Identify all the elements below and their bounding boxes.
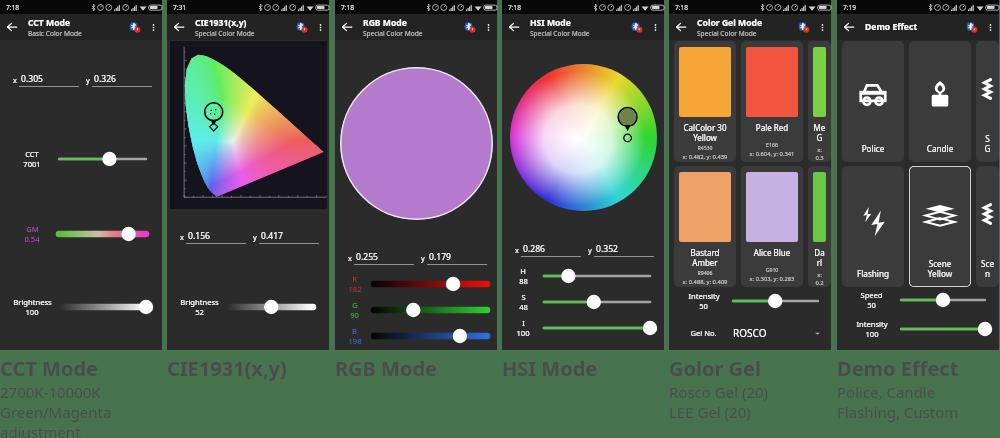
button[interactable]: More options: [479, 18, 497, 36]
staticText: Demo Effect: [865, 21, 918, 33]
staticText: Scen: [979, 258, 996, 279]
button[interactable]: Candle: [909, 41, 971, 162]
staticText: Special Color Mode: [195, 29, 255, 38]
staticText: Darl: [813, 247, 826, 269]
staticText: CIE1931(x,y): [195, 17, 247, 29]
staticText: Demo Effect: [837, 355, 959, 382]
staticText: CCT Mode: [28, 17, 71, 29]
staticText: G: [352, 300, 358, 310]
staticText: 100: [865, 329, 879, 339]
button[interactable]: More options: [144, 18, 162, 36]
button[interactable]: Back: [669, 15, 693, 39]
staticText: Green/Magenta: [0, 402, 112, 422]
button[interactable]: Bluetooth: [126, 18, 144, 36]
staticText: S: [521, 292, 526, 302]
staticText: 7001: [23, 159, 41, 169]
staticText: R9406: [679, 269, 731, 276]
button[interactable]: More options: [311, 18, 329, 36]
staticText: x: 0.303, y: 0.283: [746, 275, 798, 283]
staticText: 0.156: [188, 230, 210, 242]
staticText: Intensity: [688, 291, 720, 301]
button[interactable]: Back: [502, 15, 526, 39]
button[interactable]: Bluetooth: [293, 18, 311, 36]
staticText: x: [348, 253, 352, 263]
button[interactable]: Police: [842, 41, 904, 162]
staticText: Basic Color Mode: [28, 29, 82, 38]
button[interactable]: Back: [335, 15, 359, 39]
staticText: Candle: [912, 143, 968, 154]
staticText: Intensity: [856, 319, 888, 329]
button[interactable]: More options: [981, 18, 999, 36]
staticText: 88: [519, 276, 528, 286]
staticText: Special Color Mode: [363, 29, 423, 38]
button[interactable]: S G: [976, 41, 999, 162]
staticText: Color Gel Mode: [697, 17, 763, 29]
staticText: H: [520, 266, 526, 276]
button[interactable]: More options: [646, 18, 664, 36]
staticText: E166: [746, 141, 798, 148]
staticText: Rosco Gel (20): [669, 382, 769, 402]
staticText: Me G: [813, 122, 826, 144]
staticText: 7:31: [173, 3, 187, 12]
staticText: 0.179: [429, 251, 451, 263]
staticText: 90: [350, 310, 359, 320]
staticText: 0.54: [24, 234, 40, 244]
staticText: LEE Gel (20): [669, 402, 751, 422]
button[interactable]: Back: [167, 15, 191, 39]
staticText: CCT: [25, 149, 39, 159]
button[interactable]: Pale Red: [741, 41, 803, 162]
button[interactable]: Bastard Amber: [674, 166, 736, 287]
button[interactable]: Me G: [808, 41, 831, 162]
staticText: Golor Gel: [669, 355, 761, 382]
staticText: 7:19: [843, 3, 857, 12]
button[interactable]: More options: [813, 18, 831, 36]
staticText: 50: [699, 301, 708, 311]
staticText: R: [352, 274, 357, 284]
staticText: I: [522, 318, 525, 328]
staticText: 0.286: [523, 243, 545, 255]
staticText: ROSCO: [733, 326, 767, 340]
staticText: x: 0.2: [813, 271, 826, 286]
staticText: 2700K-10000K: [0, 382, 101, 402]
staticText: Scene Yellow: [912, 258, 968, 279]
staticText: y: [588, 245, 592, 255]
button[interactable]: Bluetooth: [628, 18, 646, 36]
staticText: 7:18: [6, 3, 20, 12]
button[interactable]: Bluetooth: [963, 18, 981, 36]
button[interactable]: Scen: [976, 166, 999, 287]
staticText: x: 0.3: [813, 146, 826, 161]
staticText: Brightness: [13, 297, 52, 307]
button[interactable]: CalColor 30 Yellow: [674, 41, 736, 162]
staticText: Pale Red: [746, 122, 798, 133]
staticText: Flashing: [845, 268, 901, 279]
staticText: 100: [25, 307, 39, 317]
staticText: Police, Candle: [837, 382, 936, 402]
staticText: B: [352, 326, 357, 336]
staticText: y: [421, 253, 425, 263]
staticText: R4530: [679, 144, 731, 151]
staticText: G910: [746, 266, 798, 273]
button[interactable]: Back: [837, 15, 861, 39]
button[interactable]: Bluetooth: [795, 18, 813, 36]
staticText: x: [13, 75, 17, 85]
staticText: 0.255: [356, 251, 378, 263]
button[interactable]: Back: [0, 15, 24, 39]
staticText: 182: [348, 284, 362, 294]
staticText: y: [86, 75, 90, 85]
staticText: GM: [26, 224, 39, 234]
button[interactable]: Flashing: [842, 166, 904, 287]
staticText: Bastard Amber: [679, 247, 731, 269]
staticText: x: 0.482, y: 0.439: [679, 153, 731, 161]
staticText: 48: [519, 302, 528, 312]
staticText: Special Color Mode: [530, 29, 590, 38]
staticText: S G: [979, 133, 996, 154]
staticText: x: [515, 245, 519, 255]
button[interactable]: Bluetooth: [461, 18, 479, 36]
staticText: 50: [867, 300, 876, 310]
staticText: HSI Mode: [530, 17, 571, 29]
staticText: x: 0.488, y: 0.409: [679, 278, 731, 286]
button[interactable]: Alice Blue: [741, 166, 803, 287]
button[interactable]: Scene Yellow: [909, 166, 971, 287]
button[interactable]: Darl: [808, 166, 831, 287]
staticText: Special Color Mode: [697, 29, 757, 38]
